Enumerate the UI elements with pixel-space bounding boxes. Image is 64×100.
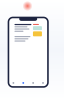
button[interactable]: Tab [38, 79, 48, 87]
button[interactable]: Tab [28, 79, 38, 87]
button[interactable]: Tab [8, 79, 18, 87]
button[interactable]: Tab [18, 79, 28, 87]
